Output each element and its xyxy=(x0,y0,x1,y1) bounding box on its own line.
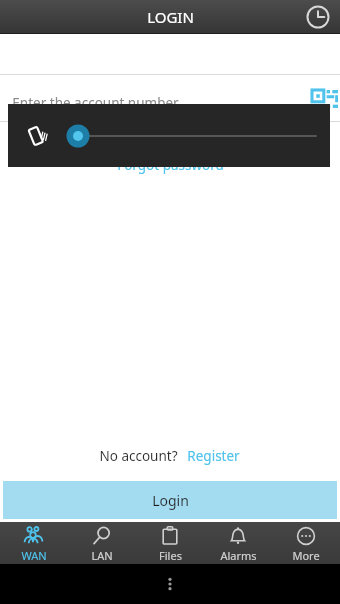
button[interactable]: Scan QR code xyxy=(310,88,340,118)
other: Vibration xyxy=(24,123,50,149)
staticText: Forgot password xyxy=(117,156,224,174)
staticText: Enter the account number xyxy=(12,94,179,112)
staticText: WAN xyxy=(21,548,47,563)
staticText: Register xyxy=(187,447,240,465)
button[interactable]: Forgot password xyxy=(111,150,230,180)
staticText: Alarms xyxy=(220,548,257,563)
button[interactable]: History xyxy=(304,3,332,31)
button[interactable]: LAN xyxy=(68,522,136,564)
button[interactable]: Enter the account number xyxy=(0,88,310,118)
button[interactable]: Files xyxy=(136,522,204,564)
button[interactable] xyxy=(66,123,316,149)
staticText: LOGIN xyxy=(147,7,194,27)
staticText: More xyxy=(292,548,320,563)
staticText: No account? xyxy=(99,447,178,465)
staticText: LAN xyxy=(91,548,113,563)
button[interactable]: Vibration xyxy=(8,104,330,167)
staticText: Login xyxy=(152,491,189,510)
button[interactable]: WAN xyxy=(0,522,68,564)
button[interactable]: More xyxy=(272,522,340,564)
button[interactable]: Login xyxy=(3,481,337,519)
staticText: Files xyxy=(159,548,182,563)
button[interactable]: Alarms xyxy=(204,522,272,564)
button[interactable]: Register xyxy=(185,443,242,469)
button[interactable]: Menu xyxy=(154,568,186,600)
